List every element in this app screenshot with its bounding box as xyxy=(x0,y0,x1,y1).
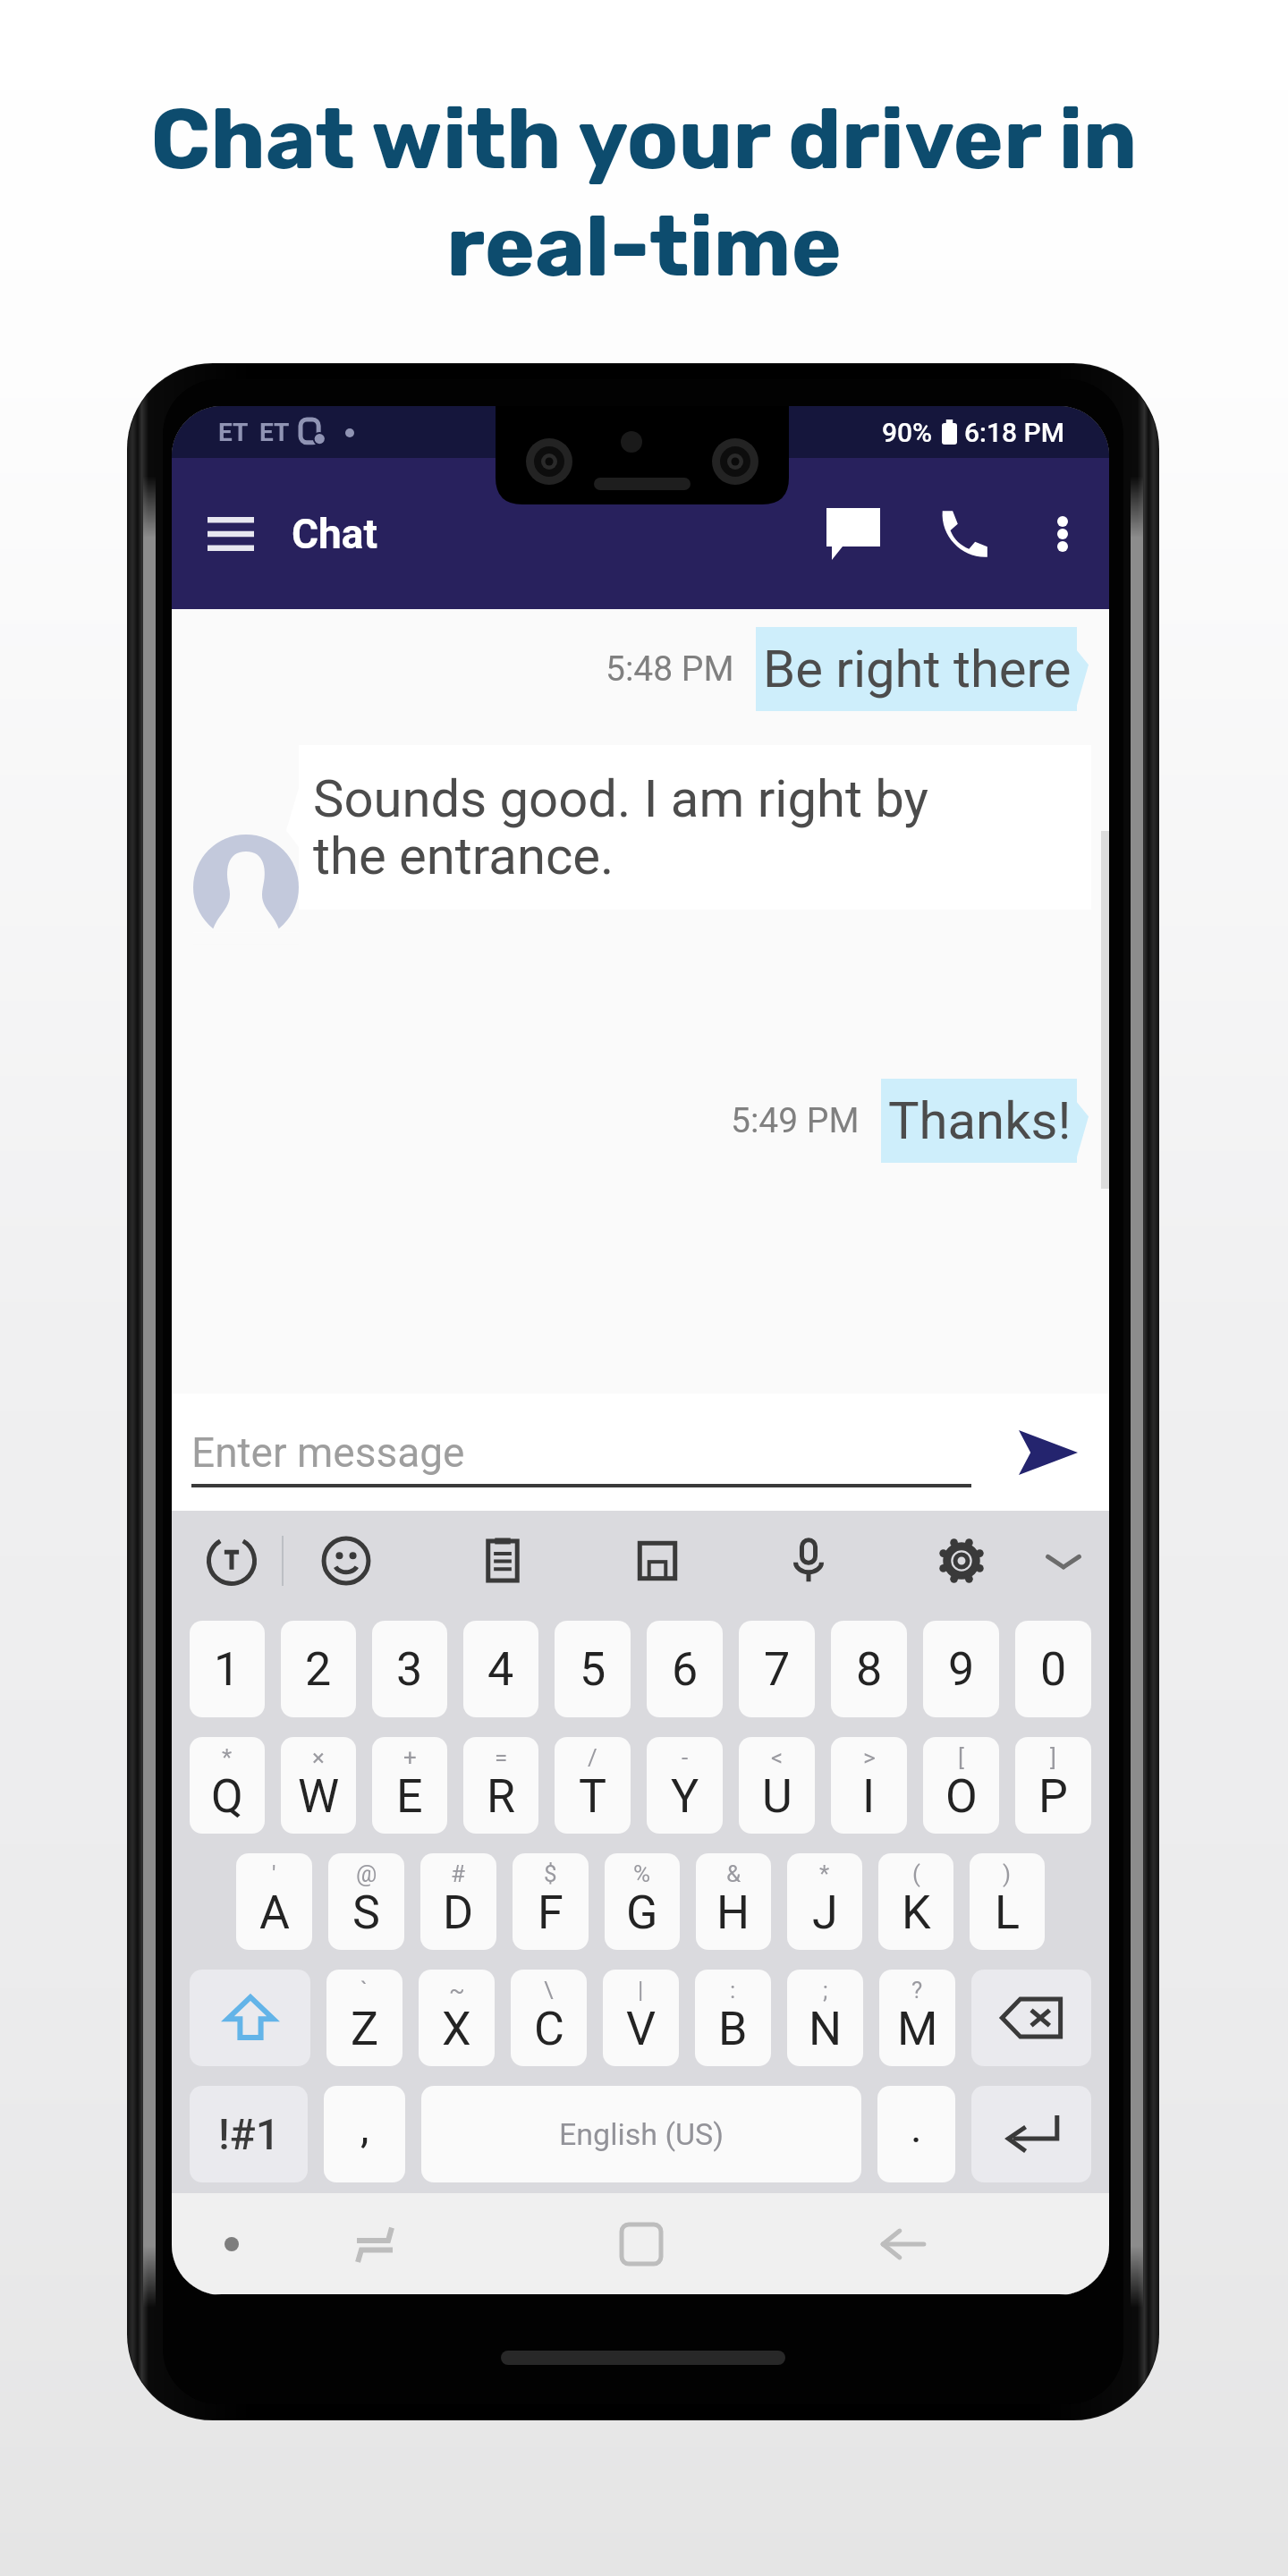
staticText: W xyxy=(298,1769,340,1824)
staticText: * xyxy=(222,1744,233,1771)
button[interactable]: @ xyxy=(328,1853,404,1950)
staticText: 5:48 PM xyxy=(606,648,734,690)
button[interactable]: Send xyxy=(1004,1408,1093,1497)
staticText: Thanks! xyxy=(888,1090,1072,1151)
staticText: O xyxy=(945,1769,978,1824)
button[interactable]: | xyxy=(603,1970,679,2066)
button[interactable]: 7 xyxy=(739,1621,815,1717)
button[interactable]: ) xyxy=(970,1853,1045,1950)
button[interactable]: × xyxy=(281,1737,356,1834)
staticText: ' xyxy=(272,1860,276,1887)
button[interactable]: ? xyxy=(879,1970,955,2066)
button[interactable]: Translate xyxy=(194,1511,269,1611)
button[interactable]: * xyxy=(787,1853,862,1950)
button[interactable]: / xyxy=(555,1737,631,1834)
staticText: 7 xyxy=(764,1642,791,1697)
button[interactable]: : xyxy=(695,1970,771,2066)
staticText: J xyxy=(812,1885,838,1940)
button[interactable]: 6 xyxy=(647,1621,723,1717)
staticText: \ xyxy=(544,1977,554,2004)
button[interactable]: ` xyxy=(326,1970,402,2066)
button[interactable]: . xyxy=(877,2086,955,2182)
staticText: ; xyxy=(823,1977,828,2004)
staticText: 0 xyxy=(1040,1642,1067,1697)
button[interactable]: Change keyboard xyxy=(339,2193,411,2294)
button[interactable]: Clipboard xyxy=(465,1511,540,1611)
staticText: ET xyxy=(259,418,290,447)
button[interactable]: Shift xyxy=(190,1970,310,2066)
button[interactable]: 1 xyxy=(190,1621,265,1717)
staticText: [ xyxy=(958,1744,964,1771)
staticText: Sounds good. I am right by the entrance. xyxy=(313,768,928,886)
staticText: P xyxy=(1038,1769,1068,1824)
staticText: V xyxy=(626,2002,657,2056)
button[interactable]: + xyxy=(372,1737,447,1834)
button[interactable]: ( xyxy=(878,1853,953,1950)
button[interactable]: % xyxy=(605,1853,680,1950)
button[interactable]: $ xyxy=(513,1853,589,1950)
staticText: N xyxy=(809,2002,843,2056)
button[interactable]: & xyxy=(696,1853,771,1950)
button[interactable]: Hide keyboard xyxy=(1026,1511,1101,1611)
staticText: C xyxy=(534,2002,564,2056)
button[interactable]: 3 xyxy=(372,1621,447,1717)
button[interactable]: \ xyxy=(511,1970,587,2066)
button[interactable]: 2 xyxy=(281,1621,356,1717)
button[interactable]: - xyxy=(647,1737,723,1834)
staticText: * xyxy=(819,1860,830,1887)
button[interactable]: 8 xyxy=(831,1621,907,1717)
button[interactable]: # xyxy=(420,1853,496,1950)
button[interactable]: ~ xyxy=(419,1970,495,2066)
button[interactable]: ] xyxy=(1015,1737,1091,1834)
button[interactable]: ' xyxy=(236,1853,312,1950)
button[interactable]: < xyxy=(739,1737,815,1834)
staticText: M xyxy=(897,2002,938,2056)
staticText: 6:18 PM xyxy=(964,417,1064,448)
button[interactable]: Home xyxy=(606,2193,677,2294)
button[interactable]: 5 xyxy=(555,1621,631,1717)
button[interactable]: 0 xyxy=(1015,1621,1091,1717)
staticText: G xyxy=(626,1885,658,1940)
button[interactable]: Open navigation menu xyxy=(188,491,274,577)
button[interactable]: * xyxy=(190,1737,265,1834)
staticText: , xyxy=(360,2102,369,2152)
staticText: Q xyxy=(211,1769,243,1824)
button[interactable]: Emoji xyxy=(309,1511,384,1611)
staticText: ~ xyxy=(449,1977,465,2004)
staticText: 8 xyxy=(856,1642,883,1697)
staticText: Be right there xyxy=(763,639,1072,699)
staticText: × xyxy=(312,1744,325,1771)
staticText: . xyxy=(911,2102,922,2152)
button[interactable]: More options xyxy=(1023,495,1102,573)
button[interactable]: [ xyxy=(923,1737,999,1834)
staticText: B xyxy=(718,2002,748,2056)
staticText: 5:49 PM xyxy=(731,1100,860,1141)
staticText: / xyxy=(588,1744,597,1771)
staticText: Chat xyxy=(292,510,378,558)
button[interactable]: Call xyxy=(916,487,1009,580)
button[interactable]: Back xyxy=(868,2193,939,2294)
button[interactable]: = xyxy=(463,1737,538,1834)
button[interactable]: Enter xyxy=(971,2086,1091,2182)
button[interactable]: English (US) xyxy=(421,2086,861,2182)
staticText: > xyxy=(863,1744,876,1771)
button[interactable]: Settings xyxy=(924,1511,999,1611)
staticText: - xyxy=(682,1744,689,1771)
button[interactable]: Voice input xyxy=(771,1511,846,1611)
staticText: English (US) xyxy=(559,2116,724,2152)
staticText: F xyxy=(538,1885,563,1940)
button[interactable]: > xyxy=(831,1737,907,1834)
staticText: & xyxy=(726,1860,741,1887)
button[interactable]: ; xyxy=(787,1970,863,2066)
button[interactable]: Stickers xyxy=(620,1511,695,1611)
staticText: 6 xyxy=(672,1642,699,1697)
staticText: T xyxy=(579,1769,607,1824)
button[interactable]: , xyxy=(324,2086,405,2182)
button[interactable]: 9 xyxy=(923,1621,999,1717)
button[interactable]: Backspace xyxy=(971,1970,1091,2066)
button[interactable]: Messages xyxy=(807,487,900,580)
button[interactable]: !#1 xyxy=(190,2086,308,2182)
staticText: L xyxy=(995,1885,1021,1940)
button[interactable]: 4 xyxy=(463,1621,538,1717)
staticText: 1 xyxy=(214,1642,241,1697)
